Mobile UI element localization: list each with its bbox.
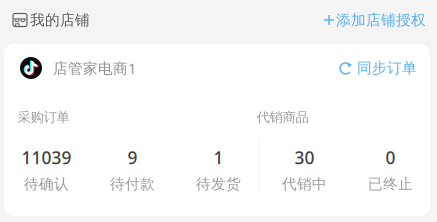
button[interactable]: 11039 — [3, 146, 89, 193]
staticText: 待发货 — [196, 175, 241, 193]
staticText: 0 — [385, 146, 395, 169]
button[interactable]: 同步订单 — [339, 59, 417, 77]
staticText: 11039 — [21, 146, 71, 169]
staticText: 同步订单 — [357, 59, 417, 77]
staticText: 待付款 — [110, 175, 155, 193]
staticText: 9 — [127, 146, 137, 169]
staticText: 采购订单 — [17, 109, 69, 125]
button[interactable]: 1 — [175, 146, 261, 193]
staticText: 待确认 — [24, 175, 69, 193]
button[interactable]: 0 — [347, 146, 433, 193]
staticText: 代销中 — [282, 175, 327, 193]
button[interactable]: 9 — [89, 146, 175, 193]
staticText: 30 — [294, 146, 314, 169]
staticText: 已终止 — [368, 175, 413, 193]
staticText: 店管家电商1 — [53, 58, 136, 78]
staticText: 1 — [213, 146, 223, 169]
button[interactable]: 30 — [261, 146, 347, 193]
button[interactable]: 添加店铺授权 — [324, 11, 426, 29]
button[interactable]: 我的店铺 — [13, 11, 90, 29]
staticText: 添加店铺授权 — [336, 11, 426, 29]
staticText: 我的店铺 — [30, 11, 90, 29]
staticText: 代销商品 — [256, 109, 308, 125]
